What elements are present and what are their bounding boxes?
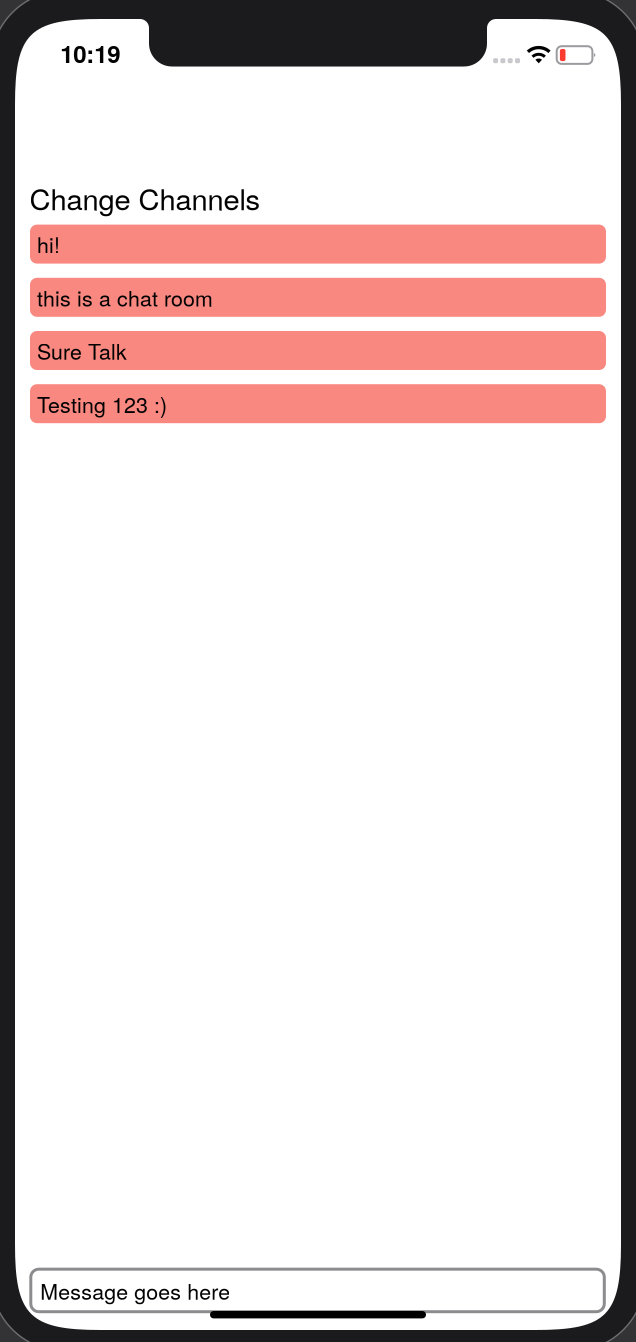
button[interactable]: Sure Talk: [30, 331, 606, 370]
button[interactable]: hi!: [30, 225, 606, 264]
staticText: Message goes here: [40, 1275, 230, 1306]
staticText: Testing 123 :): [37, 388, 167, 419]
button[interactable]: Testing 123 :): [30, 384, 606, 423]
staticText: Sure Talk: [37, 335, 127, 366]
staticText: this is a chat room: [37, 282, 213, 312]
staticText: Change Channels: [30, 177, 261, 219]
button[interactable]: this is a chat room: [30, 278, 606, 317]
staticText: 10:19: [60, 36, 120, 70]
button[interactable]: Change Channels: [30, 177, 261, 219]
button[interactable]: Message goes here: [31, 1269, 604, 1312]
staticText: hi!: [37, 229, 60, 259]
